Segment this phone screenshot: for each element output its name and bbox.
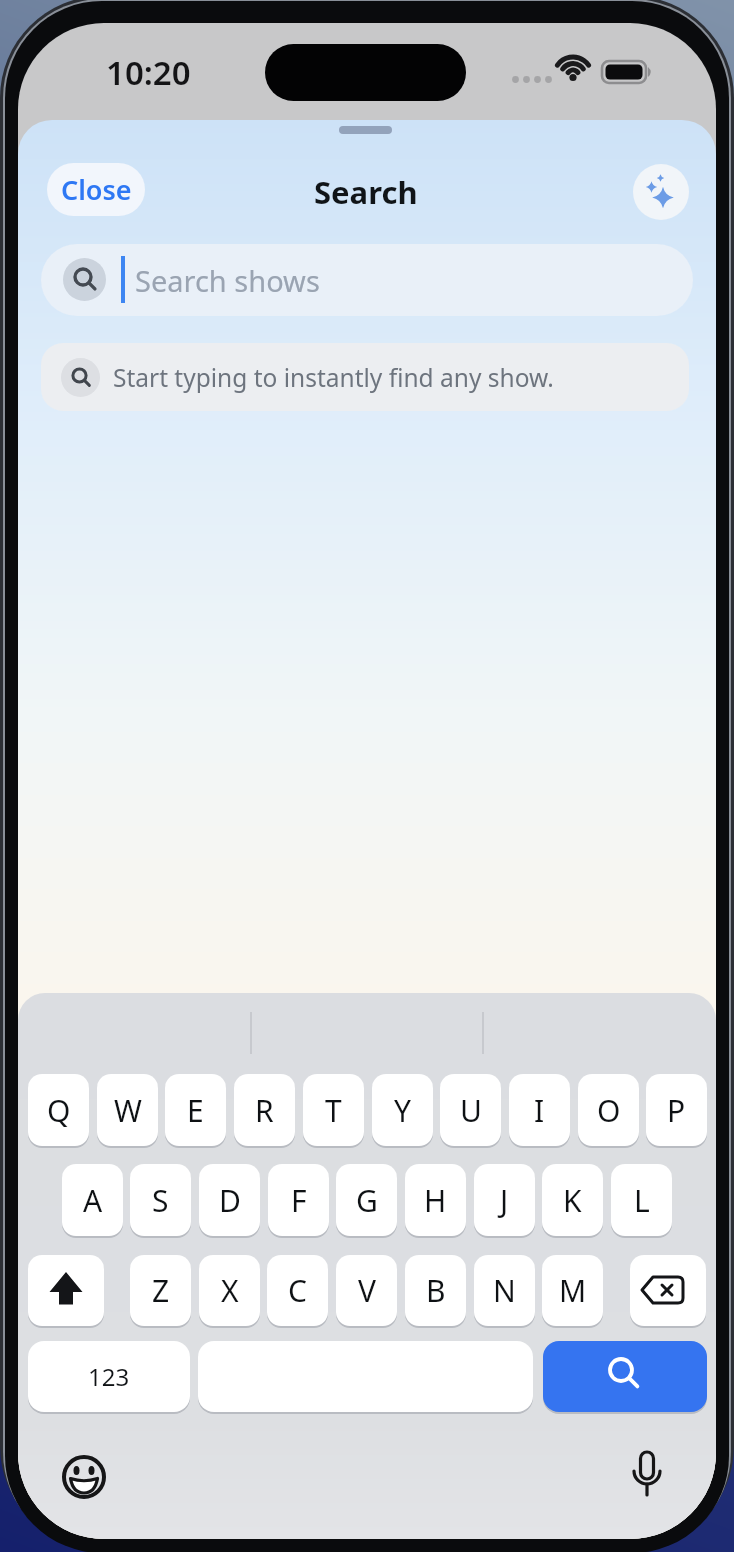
- staticText: W: [114, 1090, 142, 1131]
- button[interactable]: Close: [47, 163, 145, 216]
- staticText: J: [500, 1180, 509, 1221]
- staticText: E: [187, 1090, 204, 1131]
- staticText: Z: [152, 1270, 170, 1311]
- staticText: 123: [88, 1360, 130, 1393]
- staticText: U: [460, 1090, 482, 1131]
- staticText: Q: [47, 1090, 71, 1131]
- button[interactable]: I: [509, 1074, 570, 1146]
- button[interactable]: H: [405, 1164, 466, 1236]
- button[interactable]: G: [336, 1164, 397, 1236]
- staticText: O: [597, 1090, 621, 1131]
- button[interactable]: Start typing to instantly find any show.: [41, 343, 689, 411]
- button[interactable]: Q: [28, 1074, 89, 1146]
- staticText: M: [559, 1270, 587, 1311]
- staticText: Close: [61, 171, 132, 208]
- button[interactable]: S: [130, 1164, 191, 1236]
- staticText: P: [667, 1090, 686, 1131]
- button[interactable]: A: [62, 1164, 123, 1236]
- button[interactable]: T: [303, 1074, 364, 1146]
- staticText: Start typing to instantly find any show.: [113, 361, 554, 394]
- button[interactable]: K: [542, 1164, 603, 1236]
- button[interactable]: X: [199, 1255, 260, 1326]
- staticText: F: [291, 1180, 307, 1221]
- staticText: N: [493, 1270, 516, 1311]
- staticText: I: [534, 1090, 545, 1131]
- button[interactable]: U: [440, 1074, 501, 1146]
- button[interactable]: R: [234, 1074, 295, 1146]
- staticText: S: [152, 1180, 169, 1221]
- button[interactable]: [623, 1448, 671, 1496]
- button[interactable]: C: [267, 1255, 328, 1326]
- staticText: L: [634, 1180, 650, 1221]
- button[interactable]: N: [474, 1255, 535, 1326]
- button[interactable]: [198, 1341, 533, 1412]
- button[interactable]: P: [646, 1074, 707, 1146]
- button[interactable]: J: [474, 1164, 535, 1236]
- staticText: R: [255, 1090, 274, 1131]
- button[interactable]: O: [578, 1074, 639, 1146]
- button[interactable]: [633, 164, 689, 220]
- staticText: T: [325, 1090, 342, 1131]
- staticText: G: [356, 1180, 378, 1221]
- staticText: C: [288, 1270, 307, 1311]
- button[interactable]: L: [611, 1164, 672, 1236]
- button[interactable]: V: [336, 1255, 397, 1326]
- staticText: D: [219, 1180, 241, 1221]
- button[interactable]: M: [542, 1255, 603, 1326]
- staticText: B: [426, 1270, 446, 1311]
- staticText: X: [221, 1270, 239, 1311]
- button[interactable]: 123: [28, 1341, 190, 1412]
- button[interactable]: D: [199, 1164, 260, 1236]
- button[interactable]: [630, 1255, 706, 1326]
- button[interactable]: F: [268, 1164, 329, 1236]
- staticText: H: [424, 1180, 447, 1221]
- staticText: 10:20: [106, 50, 191, 94]
- staticText: A: [83, 1180, 103, 1221]
- button[interactable]: [543, 1341, 707, 1412]
- button[interactable]: [28, 1255, 104, 1326]
- staticText: V: [358, 1270, 376, 1311]
- button[interactable]: B: [405, 1255, 466, 1326]
- button[interactable]: Z: [130, 1255, 191, 1326]
- staticText: Y: [394, 1090, 411, 1131]
- button[interactable]: Search shows: [41, 244, 693, 316]
- staticText: Search: [314, 171, 418, 213]
- button[interactable]: [60, 1453, 108, 1501]
- button[interactable]: E: [165, 1074, 226, 1146]
- button[interactable]: Y: [372, 1074, 433, 1146]
- staticText: Search shows: [135, 261, 320, 300]
- button[interactable]: W: [97, 1074, 158, 1146]
- staticText: K: [563, 1180, 582, 1221]
